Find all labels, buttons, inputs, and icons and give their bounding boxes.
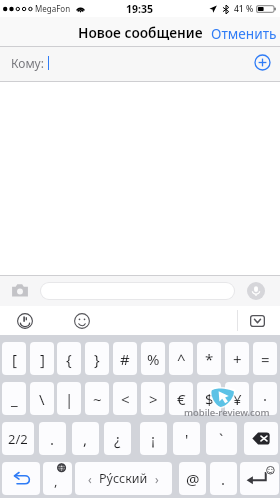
- staticText: ~: [93, 389, 102, 409]
- button[interactable]: ': [173, 422, 200, 455]
- staticText: ¿: [114, 429, 121, 449]
- staticText: }: [94, 349, 100, 369]
- staticText: #: [120, 349, 130, 369]
- staticText: <: [121, 389, 130, 409]
- button[interactable]: ~: [85, 382, 109, 415]
- button[interactable]: Undo: [2, 462, 40, 495]
- button[interactable]: ^: [169, 342, 193, 375]
- staticText: `: [219, 429, 224, 449]
- button[interactable]: <: [113, 382, 137, 415]
- button[interactable]: [: [2, 342, 26, 375]
- staticText: mobile-review.com: [184, 406, 270, 419]
- staticText: $: [205, 389, 214, 409]
- staticText: ]: [40, 349, 45, 369]
- button[interactable]: *: [197, 342, 221, 375]
- staticText: \: [39, 389, 45, 409]
- staticText: MegaFon: [35, 3, 71, 14]
- button[interactable]: Change language: [43, 462, 72, 495]
- staticText: €: [177, 389, 186, 409]
- staticText: .: [221, 469, 226, 489]
- staticText: 2/2: [8, 430, 28, 448]
- button[interactable]: Camera: [11, 283, 29, 298]
- button[interactable]: ,: [72, 422, 99, 455]
- button[interactable]: Hide keyboard: [250, 315, 265, 327]
- staticText: @: [186, 469, 200, 489]
- staticText: ¡: [151, 429, 156, 449]
- button[interactable]: `: [206, 422, 237, 455]
- button[interactable]: Add contact: [254, 54, 271, 71]
- button[interactable]: =: [253, 342, 277, 375]
- button[interactable]: .: [210, 462, 237, 495]
- button[interactable]: >: [141, 382, 165, 415]
- staticText: ,: [83, 429, 88, 449]
- button[interactable]: @: [179, 462, 206, 495]
- button[interactable]: Return: [240, 462, 279, 495]
- button[interactable]: #: [113, 342, 137, 375]
- button[interactable]: 2/2: [2, 422, 34, 455]
- staticText: ': [185, 429, 189, 449]
- button[interactable]: ¥: [225, 382, 249, 415]
- staticText: ¥: [233, 389, 242, 409]
- staticText: ‹: [88, 471, 92, 487]
- button[interactable]: |: [57, 382, 81, 415]
- staticText: =: [261, 349, 270, 369]
- button[interactable]: \: [30, 382, 54, 415]
- button[interactable]: Backspace: [244, 422, 278, 455]
- button[interactable]: +: [225, 342, 249, 375]
- staticText: ›: [155, 471, 159, 487]
- button[interactable]: _: [2, 382, 26, 415]
- button[interactable]: }: [85, 342, 109, 375]
- staticText: [: [12, 349, 17, 369]
- staticText: |: [65, 389, 74, 409]
- staticText: +: [233, 349, 242, 369]
- button[interactable]: €: [169, 382, 193, 415]
- staticText: Новое сообщение: [78, 23, 203, 42]
- button[interactable]: Emoji: [74, 313, 90, 329]
- button[interactable]: Отменить: [205, 17, 280, 47]
- staticText: Рýсский: [99, 470, 148, 487]
- staticText: *: [205, 349, 214, 369]
- button[interactable]: ¡: [140, 422, 167, 455]
- staticText: ,: [54, 472, 58, 490]
- button[interactable]: ¿: [104, 422, 131, 455]
- button[interactable]: [40, 282, 235, 300]
- button[interactable]: App Store: [17, 313, 33, 329]
- button[interactable]: Dictate: [247, 282, 265, 300]
- button[interactable]: .: [39, 422, 66, 455]
- button[interactable]: %: [141, 342, 165, 375]
- button[interactable]: ·: [253, 382, 277, 415]
- staticText: _: [11, 389, 18, 409]
- staticText: {: [66, 349, 72, 369]
- staticText: ^: [177, 349, 186, 369]
- button[interactable]: {: [57, 342, 81, 375]
- staticText: >: [149, 389, 158, 409]
- staticText: 41 %: [234, 3, 254, 15]
- button[interactable]: ‹: [75, 462, 172, 495]
- staticText: 19:35: [126, 2, 153, 16]
- staticText: .: [50, 429, 55, 449]
- button[interactable]: $: [197, 382, 221, 415]
- staticText: %: [147, 349, 160, 369]
- staticText: Отменить: [211, 24, 277, 40]
- staticText: Кому:: [11, 55, 44, 71]
- button[interactable]: ]: [30, 342, 54, 375]
- staticText: ·: [263, 389, 268, 409]
